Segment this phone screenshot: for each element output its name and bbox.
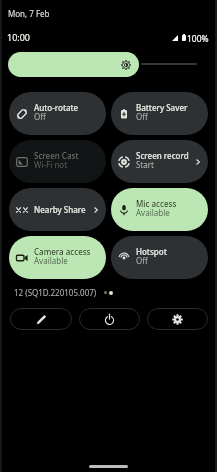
staticText: Available xyxy=(34,255,68,266)
staticText: Off xyxy=(136,255,148,266)
button[interactable]: Brightness xyxy=(8,52,208,77)
button[interactable]: Screen Cast xyxy=(9,140,106,183)
button[interactable]: Screen record xyxy=(111,140,208,183)
button[interactable]: Mic access xyxy=(111,188,208,231)
staticText: Mic access xyxy=(136,198,177,209)
button[interactable]: Camera access xyxy=(9,236,106,279)
button[interactable]: Power xyxy=(79,308,140,330)
staticText: Off xyxy=(34,111,46,122)
button[interactable]: Hotspot xyxy=(111,236,208,279)
staticText: Auto-rotate xyxy=(34,102,79,113)
staticText: Hotspot xyxy=(136,246,167,257)
staticText: Nearby Share xyxy=(34,204,86,215)
staticText: Camera access xyxy=(34,246,91,257)
button[interactable]: Edit xyxy=(10,308,72,330)
staticText: Battery Saver xyxy=(136,102,188,113)
staticText: Screen record xyxy=(136,150,189,161)
staticText: Mon, 7 Feb xyxy=(8,8,50,19)
button[interactable]: Auto-rotate xyxy=(9,92,106,135)
staticText: 12 (SQ1D.220105.007) xyxy=(14,287,97,298)
staticText: 100% xyxy=(187,33,209,45)
button[interactable]: Settings xyxy=(147,308,208,330)
staticText: Screen Cast xyxy=(34,150,79,161)
staticText: Available xyxy=(136,207,170,218)
staticText: Off xyxy=(136,111,148,122)
staticText: Start xyxy=(136,159,154,170)
staticText: Wi-Fi not connected xyxy=(34,159,106,170)
staticText: 10:00 xyxy=(7,31,31,43)
button[interactable]: Nearby Share xyxy=(9,188,106,231)
button[interactable]: Battery Saver xyxy=(111,92,208,135)
